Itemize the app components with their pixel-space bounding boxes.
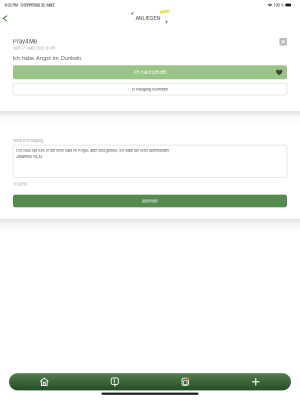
button[interactable]: Gebete [79,373,150,390]
staticText: Pray4Me [13,38,37,45]
button[interactable]: absenden [13,195,287,207]
button[interactable]: Zurück [0,12,14,25]
staticText: 109/250 [13,182,28,186]
staticText: Ich habe Angst im Dunkeln. [13,55,83,61]
button[interactable]: Ermutigung schreiben [13,83,287,95]
staticText: absenden [142,199,158,203]
staticText: Christus spricht: In der Welt habt ihr A… [16,148,170,153]
staticText: Johannes 16,33 [16,154,42,159]
staticText: 6:02 PM [5,3,18,7]
staticText: Neue Ermutigung [13,138,43,143]
staticText: vom 17. März 2023, 9 Uhr [13,46,55,50]
button[interactable]: Schließen [279,38,287,46]
staticText: Donnerstag 30. März [18,3,55,7]
button[interactable]: Neu [220,373,291,390]
staticText: Ermutigung schreiben [132,87,168,91]
button[interactable]: Ich habe gebetet [13,65,287,79]
button[interactable]: Archiv [150,373,220,390]
staticText: Ich habe gebetet [134,70,166,75]
staticText: 100 % [272,3,285,7]
button[interactable]: Start [9,373,79,390]
staticText: ANLIEGEN [135,15,160,21]
